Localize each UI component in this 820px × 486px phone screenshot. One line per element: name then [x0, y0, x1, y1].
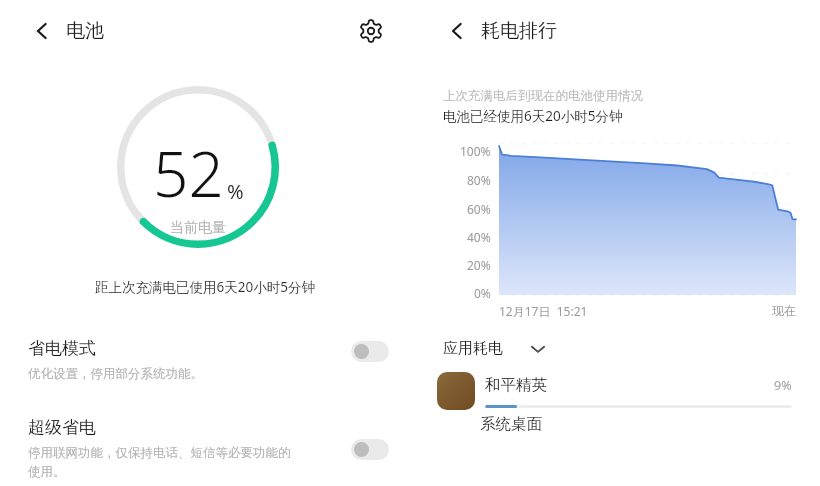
staticText: 上次充满电后到现在的电池使用情况: [443, 88, 643, 104]
button[interactable]: Toggle: [351, 341, 389, 362]
button[interactable]: 超级省电: [0, 417, 415, 483]
staticText: %: [227, 178, 244, 205]
staticText: 12月17日 15:21: [499, 303, 588, 319]
staticText: 当前电量: [170, 219, 226, 237]
staticText: 80%: [467, 172, 491, 188]
button[interactable]: Back: [439, 13, 475, 49]
button[interactable]: Settings: [351, 11, 391, 51]
button[interactable]: 和平精英: [415, 372, 820, 410]
staticText: 停用联网功能，仅保持电话、短信等必要功能的: [28, 445, 291, 461]
staticText: 电池已经使用6天20小时5分钟: [443, 107, 623, 125]
button[interactable]: 省电模式: [0, 338, 415, 385]
staticText: 20%: [467, 257, 491, 273]
staticText: 60%: [467, 201, 491, 217]
staticText: 距上次充满电已使用6天20小时5分钟: [95, 278, 315, 296]
button[interactable]: Toggle: [351, 439, 389, 460]
staticText: 0%: [474, 285, 491, 301]
staticText: 现在: [772, 303, 796, 318]
staticText: 40%: [467, 229, 491, 245]
staticText: 100%: [460, 143, 491, 159]
staticText: 超级省电: [28, 417, 96, 438]
staticText: 52: [153, 131, 224, 215]
staticText: 和平精英: [485, 375, 547, 395]
staticText: 应用耗电: [443, 339, 503, 358]
staticText: 使用。: [28, 464, 66, 480]
staticText: 省电模式: [28, 338, 96, 359]
staticText: 9%: [774, 377, 792, 394]
staticText: 系统桌面: [480, 414, 542, 434]
staticText: 优化设置，停用部分系统功能。: [28, 366, 203, 382]
staticText: 耗电排行: [481, 19, 557, 43]
staticText: 电池: [66, 19, 104, 43]
button[interactable]: Back: [24, 13, 60, 49]
button[interactable]: 应用耗电: [443, 339, 547, 358]
